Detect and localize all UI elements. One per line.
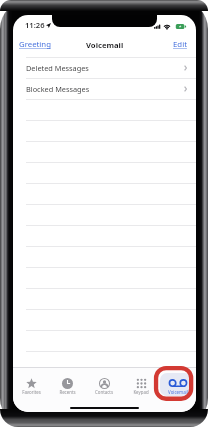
staticText: Keypad [133, 389, 149, 395]
staticText: Recents [59, 389, 76, 395]
button[interactable]: Greeting [13, 36, 56, 57]
button[interactable]: Recents [49, 367, 85, 406]
button[interactable]: Edit [168, 36, 196, 57]
staticText: Blocked Messages [26, 84, 90, 94]
button[interactable]: Deleted Messages [13, 57, 196, 78]
button[interactable]: Voicemail [159, 367, 196, 406]
staticText: Edit [173, 39, 187, 50]
staticText: Deleted Messages [26, 63, 89, 73]
staticText: Contacts [95, 389, 113, 395]
staticText: 11:26 [25, 20, 45, 30]
staticText: Greeting [19, 39, 51, 50]
button[interactable]: Keypad [122, 367, 159, 406]
staticText: Voicemail [86, 40, 124, 50]
staticText: Voicemail [168, 389, 188, 395]
staticText: Favorites [22, 389, 41, 395]
button[interactable]: Favorites [13, 367, 49, 406]
button[interactable]: Blocked Messages [13, 78, 196, 99]
button[interactable]: Contacts [85, 367, 122, 406]
